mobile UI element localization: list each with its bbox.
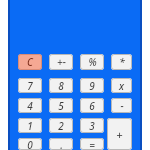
staticText: 8 xyxy=(58,79,64,93)
staticText: + xyxy=(116,127,123,142)
staticText: % xyxy=(88,55,97,69)
staticText: 9 xyxy=(89,79,95,93)
button[interactable]: x xyxy=(111,78,132,93)
button[interactable]: 0 xyxy=(18,138,42,150)
staticText: 5 xyxy=(58,99,64,113)
staticText: 7 xyxy=(27,79,33,93)
button[interactable]: 4 xyxy=(18,98,42,113)
button[interactable]: + xyxy=(107,118,132,150)
staticText: 0 xyxy=(27,138,33,150)
button[interactable]: 5 xyxy=(49,98,73,113)
staticText: 2 xyxy=(58,119,64,133)
button[interactable]: 7 xyxy=(18,78,42,93)
button[interactable]: = xyxy=(80,138,104,150)
staticText: - xyxy=(120,99,124,113)
button[interactable]: 3 xyxy=(80,118,104,133)
staticText: . xyxy=(60,138,63,150)
button[interactable]: 2 xyxy=(49,118,73,133)
staticText: x xyxy=(119,79,124,93)
button[interactable]: . xyxy=(49,138,73,150)
button[interactable]: +- xyxy=(49,54,73,70)
button[interactable]: % xyxy=(80,54,104,70)
staticText: +- xyxy=(57,55,66,69)
button[interactable]: 6 xyxy=(80,98,104,113)
button[interactable]: 9 xyxy=(80,78,104,93)
staticText: 6 xyxy=(89,99,95,113)
staticText: C xyxy=(27,55,33,69)
staticText: 1 xyxy=(27,119,33,133)
button[interactable]: * xyxy=(111,54,132,70)
button[interactable]: C xyxy=(18,54,42,70)
staticText: * xyxy=(119,55,125,69)
staticText: = xyxy=(89,138,95,150)
button[interactable]: 8 xyxy=(49,78,73,93)
button[interactable]: - xyxy=(111,98,132,113)
staticText: 4 xyxy=(27,99,33,113)
staticText: 3 xyxy=(89,119,95,133)
button[interactable]: 1 xyxy=(18,118,42,133)
